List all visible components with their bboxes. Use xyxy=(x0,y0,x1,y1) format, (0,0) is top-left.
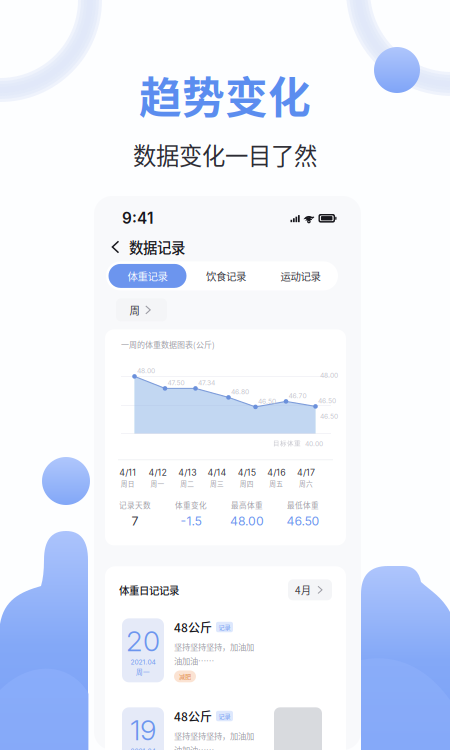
staticText: 46.50 xyxy=(320,412,338,420)
button[interactable]: 19 xyxy=(114,699,337,750)
staticText: 体重变化 xyxy=(175,499,207,510)
staticText: 周 xyxy=(129,302,139,317)
staticText: 46.50 xyxy=(286,513,319,528)
staticText: 4/16 xyxy=(267,467,285,478)
staticText: 数据记录 xyxy=(129,237,185,257)
button[interactable]: 数据记录 xyxy=(94,228,361,261)
staticText: 48公斤 xyxy=(174,707,212,725)
staticText: 周日 xyxy=(121,479,135,488)
staticText: 47.50 xyxy=(167,379,184,387)
staticText: 46.50 xyxy=(258,397,276,405)
staticText: 油加油…… xyxy=(174,655,214,667)
staticText: 趋势变化 xyxy=(139,64,311,126)
staticText: 周四 xyxy=(240,479,254,488)
staticText: 48公斤 xyxy=(174,618,212,636)
staticText: 48.00 xyxy=(137,367,155,375)
staticText: 4/17 xyxy=(297,467,315,478)
staticText: 4/14 xyxy=(207,467,226,478)
staticText: 4/12 xyxy=(148,467,166,478)
button[interactable]: 4月 xyxy=(288,579,332,600)
staticText: 坚持坚持坚持，加油加 xyxy=(174,641,254,653)
staticText: 目标体重 40.00 xyxy=(273,439,323,448)
staticText: 最低体重 xyxy=(287,499,319,510)
staticText: 运动记录 xyxy=(280,268,320,283)
staticText: 减肥 xyxy=(179,672,191,681)
staticText: 2021.04 xyxy=(130,747,155,750)
button[interactable]: 体重记录 xyxy=(108,264,186,288)
staticText: 记录 xyxy=(218,712,230,720)
staticText: 48.00 xyxy=(230,513,264,528)
staticText: 一周的体重数据图表(公斤) xyxy=(121,338,215,350)
staticText: 周三 xyxy=(210,479,224,488)
button[interactable]: 20 xyxy=(114,610,337,690)
staticText: 记录 xyxy=(218,623,230,631)
staticText: 46.70 xyxy=(288,392,306,400)
button[interactable]: 运动记录 xyxy=(265,264,335,288)
staticText: 46.80 xyxy=(231,388,249,396)
staticText: 4/11 xyxy=(119,467,136,478)
staticText: 饮食记录 xyxy=(206,268,246,283)
staticText: 周一 xyxy=(136,667,150,677)
staticText: 19 xyxy=(130,713,156,747)
staticText: 46.50 xyxy=(318,397,336,405)
staticText: 2021.04 xyxy=(130,658,155,666)
staticText: 20 xyxy=(126,624,160,658)
staticText: 周一 xyxy=(150,479,164,488)
staticText: 体重记录 xyxy=(127,268,167,283)
staticText: 体重日记记录 xyxy=(119,582,179,597)
staticText: 坚持坚持坚持，加油加 xyxy=(174,730,254,742)
staticText: 4月 xyxy=(295,583,311,597)
staticText: 9:41 xyxy=(122,209,153,228)
staticText: 47.34 xyxy=(198,379,215,387)
staticText: 48.00 xyxy=(320,371,338,379)
staticText: 周五 xyxy=(269,479,283,488)
staticText: 7 xyxy=(131,513,138,528)
button[interactable]: 周 xyxy=(116,298,167,321)
staticText: 数据变化一目了然 xyxy=(133,138,317,172)
staticText: -1.5 xyxy=(180,513,201,528)
staticText: 记录天数 xyxy=(119,499,151,510)
staticText: 4/15 xyxy=(238,467,256,478)
staticText: 4/13 xyxy=(178,467,196,478)
staticText: 最高体重 xyxy=(231,499,263,510)
staticText: 油加油…… xyxy=(174,744,214,750)
staticText: 周六 xyxy=(299,479,313,488)
button[interactable]: 饮食记录 xyxy=(191,264,261,288)
staticText: 周二 xyxy=(180,479,194,488)
